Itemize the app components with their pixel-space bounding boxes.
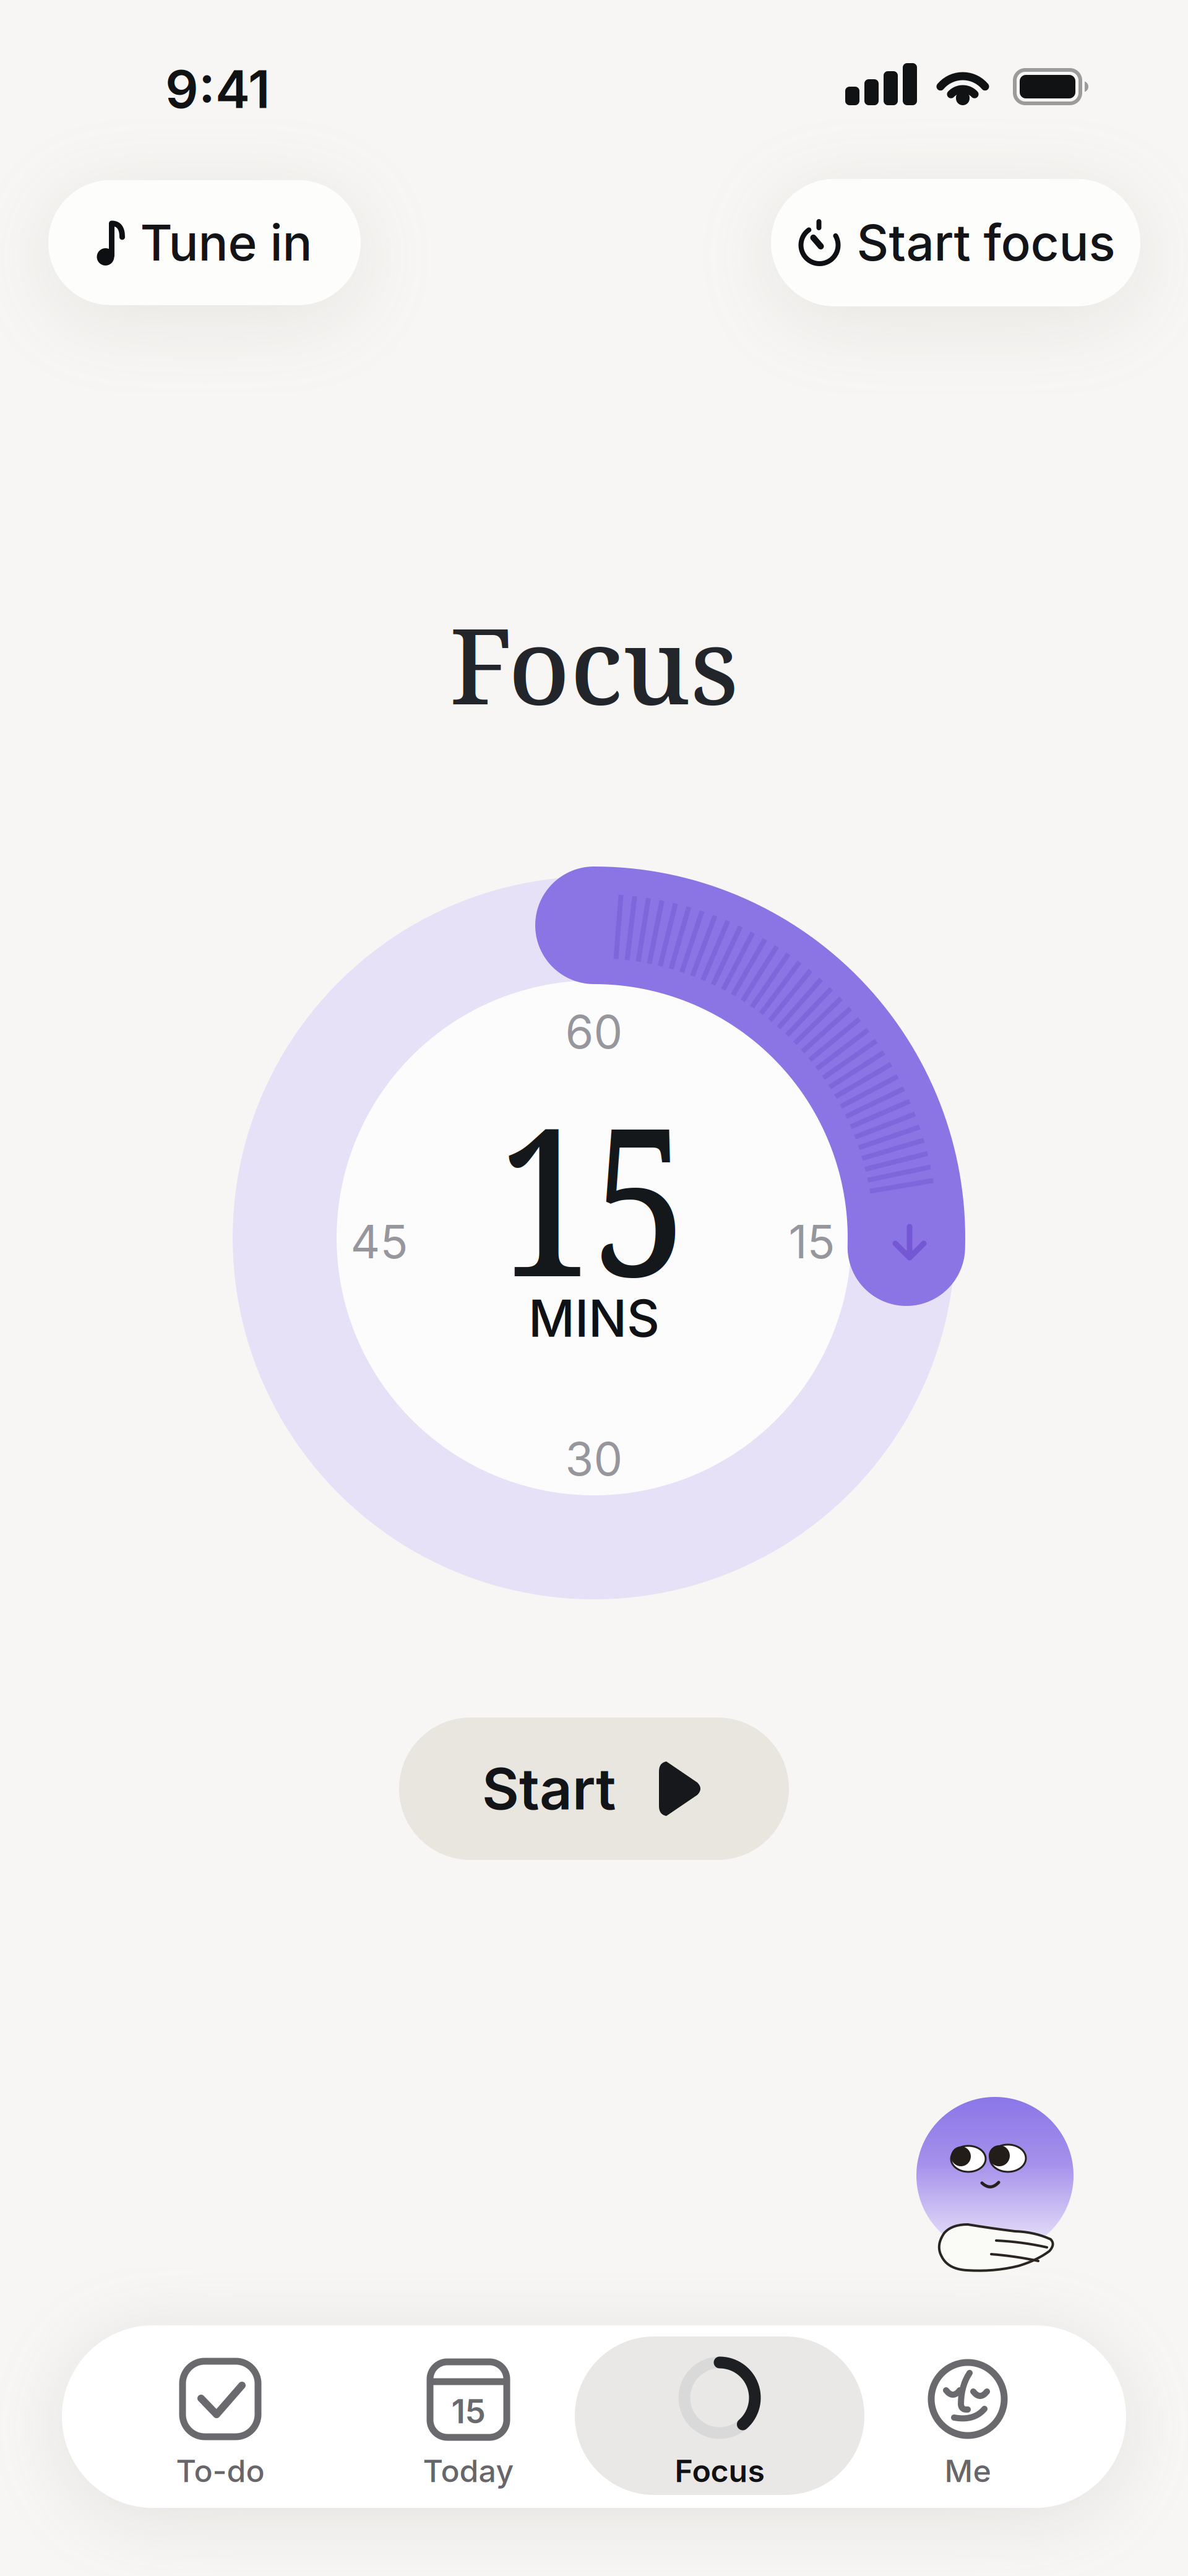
staticText: 15 bbox=[789, 1214, 835, 1269]
staticText: 15 bbox=[478, 1058, 707, 1336]
staticText: Today bbox=[423, 2452, 514, 2490]
staticText: Focus bbox=[675, 2452, 764, 2490]
button[interactable]: Me bbox=[835, 2327, 1101, 2506]
staticText: Tune in bbox=[140, 213, 312, 273]
staticText: 9:41 bbox=[165, 58, 270, 121]
staticText: 15 bbox=[451, 2391, 485, 2431]
staticText: Start focus bbox=[857, 213, 1115, 273]
staticText: 30 bbox=[565, 1431, 623, 1486]
staticText: Me bbox=[945, 2452, 991, 2490]
staticText: Focus bbox=[450, 592, 738, 735]
button[interactable]: 15 bbox=[335, 2327, 601, 2506]
button[interactable]: Start focus bbox=[771, 179, 1140, 306]
staticText: MINS bbox=[528, 1288, 660, 1349]
staticText: To-do bbox=[176, 2452, 265, 2490]
button[interactable]: Focus bbox=[575, 2327, 864, 2506]
staticText: 45 bbox=[351, 1214, 408, 1269]
button[interactable]: To-do bbox=[87, 2327, 353, 2506]
staticText: Start bbox=[482, 1754, 616, 1823]
staticText: 60 bbox=[565, 1004, 623, 1059]
button[interactable]: Tune in bbox=[48, 180, 361, 305]
button[interactable]: Start bbox=[399, 1718, 789, 1860]
